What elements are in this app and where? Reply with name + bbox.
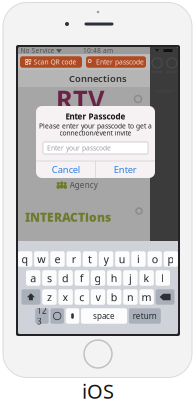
button[interactable]: Switch keyboard (50, 308, 64, 324)
staticText: h (111, 271, 118, 285)
staticText: a (30, 271, 36, 285)
staticText: o (152, 252, 158, 266)
button[interactable]: b (107, 289, 121, 305)
button[interactable]: k (139, 270, 154, 286)
button[interactable]: h (107, 270, 121, 286)
staticText: Cancel (52, 163, 80, 176)
button[interactable]: y (99, 251, 113, 267)
button[interactable]: 123 (35, 308, 49, 324)
staticText: q (22, 252, 29, 266)
staticText: Scan QR code (33, 58, 76, 66)
button[interactable]: g (91, 270, 105, 286)
staticText: u (119, 252, 126, 266)
button[interactable]: i (131, 251, 146, 267)
staticText: connection/event invite (59, 129, 131, 137)
button[interactable]: z (42, 289, 57, 305)
button[interactable]: a (26, 270, 40, 286)
staticText: z (47, 290, 52, 304)
staticText: 10:48 am (83, 46, 113, 55)
staticText: Enter Passcode (65, 111, 125, 122)
staticText: No Service (20, 46, 54, 55)
staticText: f (80, 271, 84, 285)
staticText: Connections (69, 72, 127, 85)
button[interactable]: m (139, 289, 154, 305)
staticText: Please enter your passcode to get a (39, 122, 152, 130)
staticText: w (37, 252, 45, 266)
button[interactable]: Delete (156, 289, 175, 305)
staticText: l (161, 271, 164, 285)
button[interactable]: Scan QR code (20, 56, 82, 68)
staticText: return (133, 311, 157, 321)
staticText: b (111, 290, 118, 304)
button[interactable]: v (91, 289, 105, 305)
button[interactable]: q (18, 251, 32, 267)
button[interactable]: u (115, 251, 129, 267)
staticText: RTV (56, 82, 104, 116)
button[interactable]: l (156, 270, 170, 286)
staticText: t (88, 252, 92, 266)
staticText: k (144, 271, 150, 285)
staticText: s (47, 271, 52, 285)
button[interactable]: n (123, 289, 138, 305)
staticText: c (79, 290, 84, 304)
button[interactable]: space (81, 308, 127, 324)
staticText: Enter your passcode (47, 144, 111, 152)
button[interactable]: return (129, 308, 161, 324)
staticText: Enter passcode (96, 58, 144, 66)
button[interactable]: c (75, 289, 89, 305)
button[interactable]: x (58, 289, 73, 305)
staticText: y (104, 252, 109, 266)
staticText: g (94, 271, 101, 285)
button[interactable]: w (34, 251, 48, 267)
button[interactable]: Dictate (66, 308, 79, 324)
staticText: e (54, 252, 60, 266)
staticText: v (95, 290, 100, 304)
staticText: INTERACTions (25, 209, 111, 225)
staticText: space (93, 311, 115, 321)
button[interactable]: s (42, 270, 57, 286)
button[interactable]: Shift (21, 289, 40, 305)
button[interactable]: f (75, 270, 89, 286)
button[interactable]: Cancel (36, 161, 95, 178)
button[interactable]: e (50, 251, 65, 267)
staticText: j (129, 271, 132, 285)
button[interactable]: Enter passcode (86, 56, 146, 68)
button[interactable]: j (123, 270, 138, 286)
button[interactable]: p (164, 251, 178, 267)
staticText: m (142, 290, 152, 304)
button[interactable]: r (66, 251, 81, 267)
staticText: x (63, 290, 69, 304)
staticText: i (137, 252, 140, 266)
staticText: d (62, 271, 69, 285)
staticText: r (72, 252, 76, 266)
staticText: p (167, 252, 174, 266)
staticText: Enter (114, 163, 137, 176)
button[interactable]: t (83, 251, 97, 267)
button[interactable]: Enter (96, 161, 155, 178)
staticText: Agency (70, 180, 98, 190)
staticText: 123 (37, 305, 47, 327)
button[interactable]: d (58, 270, 73, 286)
staticText: iOS (82, 378, 114, 404)
button[interactable]: o (147, 251, 162, 267)
staticText: n (127, 290, 134, 304)
